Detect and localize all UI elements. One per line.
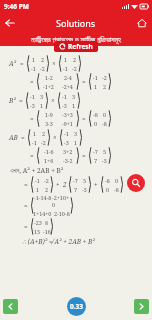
staticText: -1 xyxy=(31,65,36,72)
staticText: -7 xyxy=(93,148,98,155)
staticText: -2 xyxy=(40,65,45,72)
staticText: × xyxy=(51,96,55,105)
staticText: 1 xyxy=(33,130,37,137)
staticText: 3 xyxy=(40,93,44,100)
staticText: -1 xyxy=(63,65,68,72)
button[interactable]: Search xyxy=(127,174,145,192)
staticText: ∴ (A+B)² ≠ A² + 2AB + B² xyxy=(22,237,95,246)
staticText: = xyxy=(82,77,86,86)
staticText: -1-14-8 xyxy=(34,194,52,201)
staticText: -8 xyxy=(93,111,98,118)
button[interactable]: Previous xyxy=(3,299,18,314)
staticText: ম্যাট্রিক্সের প্রকারভেদ ও ম্যাট্রিক্স প্… xyxy=(0,35,152,45)
staticText: 2 xyxy=(73,56,77,63)
staticText: -8 xyxy=(105,177,110,184)
staticText: -7 xyxy=(73,177,78,184)
staticText: 5 xyxy=(103,148,107,155)
staticText: -1 xyxy=(93,74,98,81)
staticText: -2 xyxy=(72,65,77,72)
staticText: = xyxy=(30,114,34,123)
staticText: -2+10+0 xyxy=(52,194,71,208)
staticText: -2+4 xyxy=(62,83,73,90)
button[interactable]: Back xyxy=(0,13,20,33)
staticText: এখন, A² + 2AB + B² xyxy=(10,166,64,175)
staticText: 0.33 xyxy=(70,302,83,311)
staticText: -1 xyxy=(32,139,37,146)
staticText: = xyxy=(24,180,28,189)
button[interactable]: Refresh xyxy=(54,41,98,52)
staticText: AB xyxy=(9,133,18,142)
staticText: 0 xyxy=(94,120,98,127)
staticText: + xyxy=(94,180,98,189)
staticText: 2 xyxy=(42,130,46,137)
staticText: = xyxy=(21,133,25,142)
staticText: -3 xyxy=(64,139,69,146)
staticText: 1-2 xyxy=(45,74,53,81)
staticText: 1+6 xyxy=(44,157,54,164)
staticText: -3-2 xyxy=(63,157,73,164)
staticText: Solutions xyxy=(56,17,96,29)
staticText: 1 xyxy=(94,83,98,90)
staticText: -5 xyxy=(82,186,87,193)
staticText: -1 xyxy=(62,93,67,100)
staticText: -3 xyxy=(62,102,67,109)
staticText: 7 xyxy=(94,157,98,164)
staticText: Refresh xyxy=(68,42,93,51)
staticText: -23 xyxy=(34,219,42,226)
staticText: -1 xyxy=(35,177,40,184)
staticText: 7 xyxy=(74,186,78,193)
staticText: 1 xyxy=(74,139,78,146)
staticText: = xyxy=(24,201,28,210)
staticText: 2 xyxy=(63,180,67,189)
staticText: -2 xyxy=(44,177,49,184)
staticText: 5 xyxy=(83,177,87,184)
staticText: 2 xyxy=(41,56,45,63)
staticText: = xyxy=(24,222,28,231)
staticText: + xyxy=(56,180,60,189)
staticText: -3+3 xyxy=(62,111,73,118)
staticText: -1 xyxy=(64,130,69,137)
staticText: 9:46 PM xyxy=(4,2,29,11)
staticText: 2 xyxy=(45,186,49,193)
staticText: 3 xyxy=(72,93,76,100)
staticText: 1 xyxy=(36,186,40,193)
staticText: = xyxy=(19,96,23,105)
staticText: A² xyxy=(9,59,17,68)
staticText: -3 xyxy=(30,102,35,109)
staticText: 0 xyxy=(115,177,119,184)
staticText: 1 xyxy=(64,56,68,63)
staticText: × xyxy=(52,59,56,68)
staticText: 0 xyxy=(106,186,110,193)
staticText: -16 xyxy=(43,228,51,235)
staticText: -1-6 xyxy=(44,148,54,155)
staticText: 0 xyxy=(103,111,107,118)
staticText: B² xyxy=(9,96,16,105)
staticText: 3-3 xyxy=(45,120,53,127)
staticText: 15 xyxy=(34,228,41,235)
staticText: -1 xyxy=(30,93,35,100)
staticText: 1 xyxy=(72,102,76,109)
staticText: -2 xyxy=(41,139,46,146)
staticText: = xyxy=(82,114,86,123)
staticText: 1 xyxy=(40,102,44,109)
staticText: -1+2 xyxy=(43,83,54,90)
staticText: 2-10-8 xyxy=(54,210,70,217)
staticText: 1 xyxy=(32,56,36,63)
staticText: 1+14+0 xyxy=(33,210,52,217)
staticText: = xyxy=(30,77,34,86)
button[interactable]: Next xyxy=(134,299,149,314)
staticText: = xyxy=(82,151,86,160)
staticText: -9+1 xyxy=(62,120,73,127)
staticText: 2-4 xyxy=(64,74,72,81)
staticText: 3 xyxy=(74,130,78,137)
staticText: 1-9 xyxy=(45,111,53,118)
staticText: -8 xyxy=(114,186,119,193)
staticText: 3+2 xyxy=(63,148,73,155)
staticText: = xyxy=(20,59,24,68)
button[interactable]: Home xyxy=(132,13,152,33)
staticText: × xyxy=(53,133,57,142)
staticText: = xyxy=(30,151,34,160)
staticText: -2 xyxy=(102,74,107,81)
button[interactable]: 0.33 xyxy=(67,297,86,316)
staticText: 2 xyxy=(103,83,107,90)
